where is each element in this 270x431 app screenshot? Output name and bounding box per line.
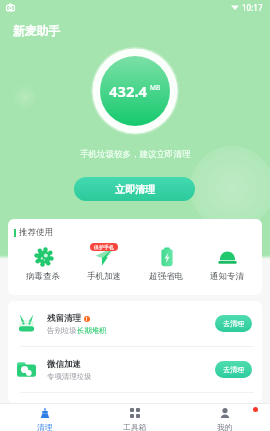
staticText: 手机垃圾较多，建议立即清理 (80, 149, 191, 160)
staticText: 工具箱 (123, 422, 147, 431)
staticText: 新麦助手 (13, 24, 61, 39)
staticText: 病毒查杀 (26, 271, 60, 282)
staticText: 推荐使用 (19, 227, 53, 238)
staticText: 432.4 (109, 81, 148, 101)
button[interactable]: 微信加速 (8, 347, 262, 392)
button[interactable]: 立即清理 (74, 177, 195, 201)
button[interactable]: 残留清理 (8, 301, 262, 346)
button[interactable]: 去清理 (215, 361, 252, 378)
button[interactable]: 去清理 (215, 315, 252, 332)
staticText: 长期堆积 (77, 326, 107, 335)
staticText: 微信加速 (47, 359, 81, 370)
staticText: 专项清理垃圾 (47, 372, 92, 381)
staticText: 手机加速 (87, 271, 121, 282)
staticText: 残留清理 (47, 313, 81, 324)
button[interactable]: 手机加速 (77, 246, 131, 282)
staticText: 告别垃圾 (47, 326, 77, 335)
button[interactable]: 通知专清 (200, 246, 254, 282)
button[interactable]: 病毒查杀 (16, 246, 70, 282)
staticText: MB (150, 83, 161, 92)
button[interactable]: 工具箱 (90, 404, 180, 431)
staticText: 立即清理 (115, 183, 155, 196)
staticText: 通知专清 (210, 271, 244, 282)
staticText: 10:17 (242, 2, 263, 13)
staticText: 超强省电 (149, 271, 183, 282)
staticText: ! (86, 316, 88, 322)
button[interactable]: 超强省电 (139, 246, 193, 282)
staticText: 保护手机 (94, 244, 114, 250)
staticText: 去清理 (223, 365, 244, 374)
staticText: 我的 (217, 422, 233, 431)
staticText: 去清理 (223, 319, 244, 328)
button[interactable]: 我的 (180, 404, 270, 431)
button[interactable]: 清理 (0, 404, 90, 431)
staticText: 清理 (37, 422, 53, 431)
